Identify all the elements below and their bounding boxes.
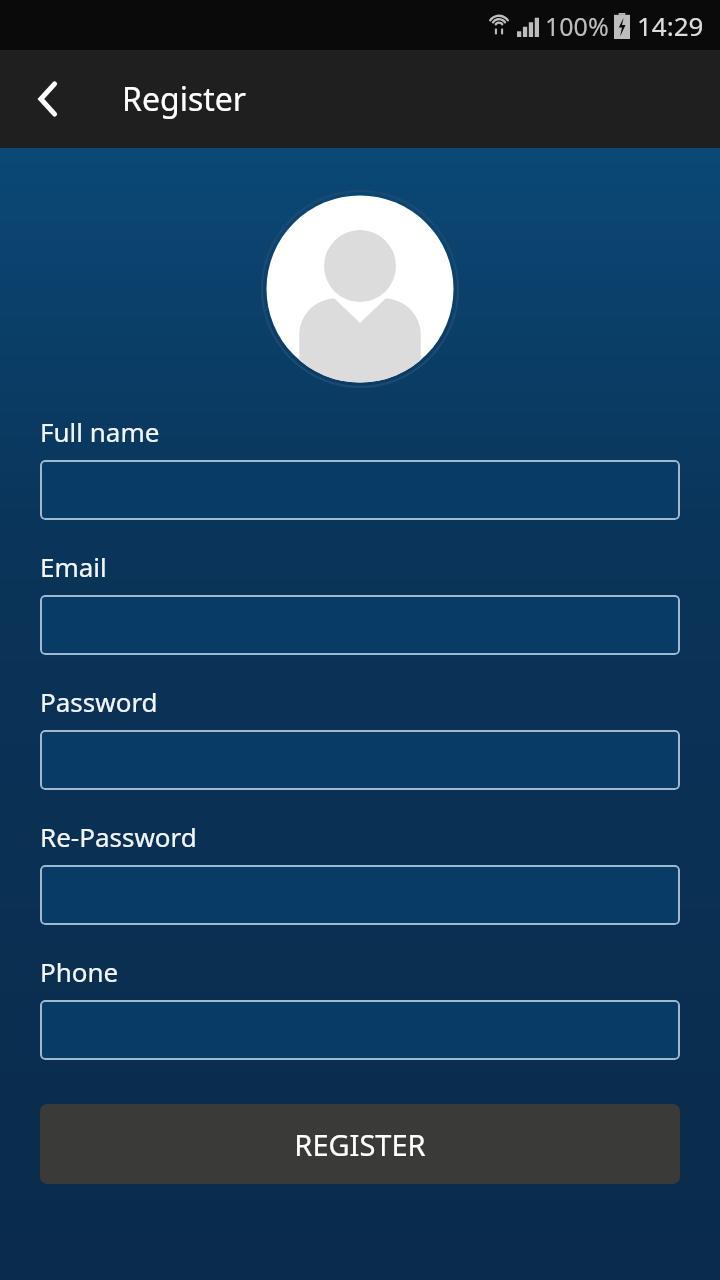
staticText: Re-Password xyxy=(40,819,197,854)
staticText: Email xyxy=(40,549,107,584)
staticText: Register xyxy=(122,77,247,121)
staticText: Phone xyxy=(40,954,119,989)
staticText: 14:29 xyxy=(637,8,704,43)
button[interactable] xyxy=(40,730,680,790)
staticText: Full name xyxy=(40,414,160,449)
button[interactable]: REGISTER xyxy=(40,1104,680,1184)
staticText: REGISTER xyxy=(294,1125,426,1164)
staticText: Password xyxy=(40,684,158,719)
button[interactable]: Profile photo xyxy=(261,190,459,388)
button[interactable] xyxy=(40,1000,680,1060)
button[interactable] xyxy=(40,865,680,925)
button[interactable] xyxy=(40,460,680,520)
button[interactable]: Back xyxy=(0,50,96,148)
staticText: 100% xyxy=(545,9,609,43)
button[interactable] xyxy=(40,595,680,655)
